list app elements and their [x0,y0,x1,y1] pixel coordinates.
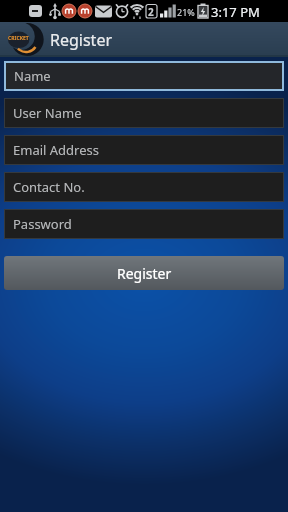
staticText: Register [117,264,172,283]
staticText: CRICKET [8,35,29,42]
button[interactable]: Password [5,210,283,238]
button[interactable]: User Name [5,99,283,127]
staticText: Contact No. [13,178,85,196]
button[interactable]: Email Address [5,136,283,164]
staticText: Email Address [13,141,99,159]
staticText: 21% [177,6,195,18]
staticText: Name [14,67,51,85]
staticText: 2 [148,5,154,19]
staticText: User Name [13,104,82,122]
button[interactable]: Register [4,256,284,290]
button[interactable]: Name [6,63,282,89]
staticText: Password [13,215,72,233]
button[interactable]: Contact No. [5,173,283,201]
staticText: Register [50,29,113,51]
button[interactable]: CRICKET [0,22,288,57]
staticText: 3:17 PM [211,3,260,21]
